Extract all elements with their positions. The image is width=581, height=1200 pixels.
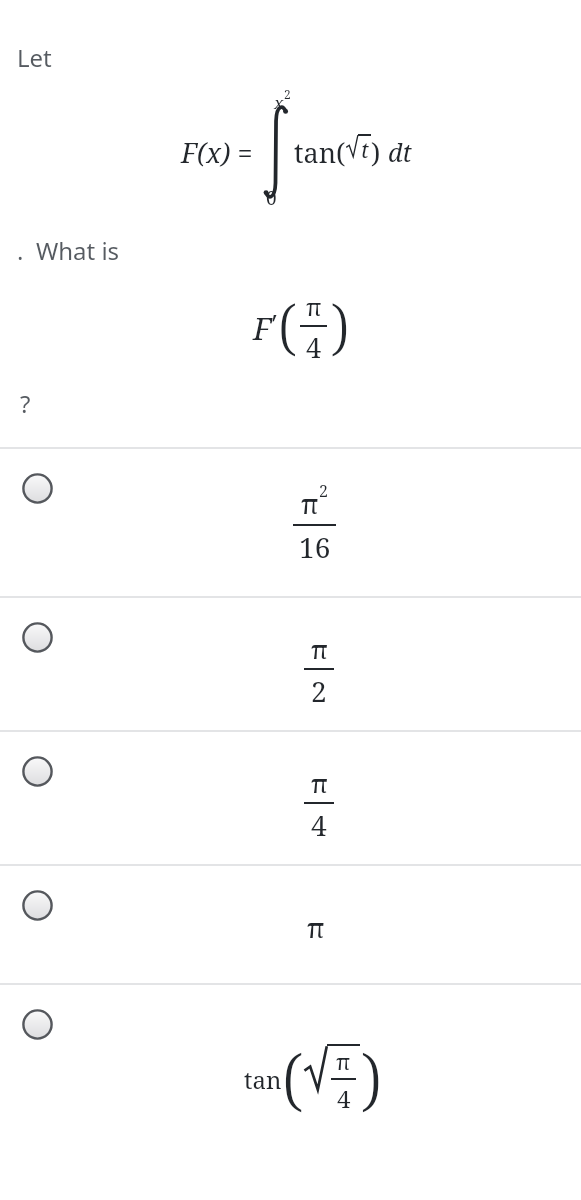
staticText: tan — [244, 1063, 282, 1096]
staticText: ) — [330, 285, 349, 367]
staticText: 2 — [311, 672, 327, 710]
staticText: F(x) = — [181, 134, 253, 171]
button[interactable]: Select this answer — [0, 866, 581, 983]
staticText: 4 — [337, 1082, 351, 1115]
staticText: π — [336, 1046, 351, 1076]
button[interactable]: Select this answer — [0, 732, 581, 864]
staticText: ) — [360, 1031, 382, 1124]
other: Select this answer — [22, 890, 53, 921]
staticText: t — [361, 136, 369, 165]
other: Select this answer — [22, 473, 53, 504]
staticText: π — [311, 631, 328, 666]
staticText: 0 — [266, 185, 277, 211]
staticText: x — [274, 91, 284, 114]
staticText: 4 — [311, 806, 327, 844]
staticText: π — [306, 290, 322, 323]
button[interactable]: Select this answer — [0, 985, 581, 1150]
staticText: π — [301, 485, 319, 522]
staticText: 2 — [284, 86, 291, 102]
staticText: F — [253, 307, 272, 349]
staticText: 4 — [306, 329, 322, 366]
staticText: ) — [371, 134, 381, 171]
staticText: 2 — [319, 480, 328, 502]
staticText: tan( — [294, 134, 346, 171]
staticText: π — [307, 909, 325, 946]
staticText: ( — [282, 1031, 304, 1124]
other: Select this answer — [22, 756, 53, 787]
other: Select this answer — [22, 622, 53, 653]
staticText: . What is — [17, 234, 120, 267]
other: Select this answer — [22, 1009, 53, 1040]
staticText: ′ — [272, 306, 278, 343]
staticText: dt — [388, 135, 412, 169]
staticText: ( — [278, 285, 297, 367]
staticText: ? — [20, 387, 31, 420]
staticText: 16 — [299, 528, 331, 566]
staticText: Let — [17, 41, 52, 74]
staticText: π — [311, 765, 328, 800]
button[interactable]: Select this answer — [0, 598, 581, 730]
button[interactable]: Select this answer — [0, 449, 581, 596]
